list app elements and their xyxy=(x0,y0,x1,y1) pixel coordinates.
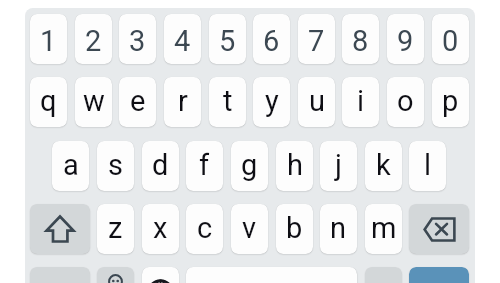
button[interactable]: d xyxy=(142,141,179,191)
staticText: 5 xyxy=(219,24,236,58)
button[interactable]: j xyxy=(320,141,357,191)
button[interactable]: 6 xyxy=(253,14,290,64)
staticText: 2 xyxy=(85,24,102,58)
button[interactable]: y xyxy=(253,77,290,127)
staticText: a xyxy=(63,148,79,182)
button[interactable]: x xyxy=(142,204,179,254)
staticText: i xyxy=(357,84,365,118)
button[interactable]: b xyxy=(276,204,313,254)
staticText: 6 xyxy=(263,24,280,58)
button[interactable]: 2 xyxy=(75,14,112,64)
button[interactable]: Emoji xyxy=(97,267,134,283)
button[interactable]: c xyxy=(186,204,223,254)
button[interactable]: Enter xyxy=(409,267,469,283)
button[interactable]: Change language xyxy=(142,267,179,283)
button[interactable]: v xyxy=(231,204,268,254)
staticText: c xyxy=(197,211,213,245)
button[interactable]: o xyxy=(387,77,424,127)
staticText: l xyxy=(424,148,432,182)
button[interactable]: z xyxy=(97,204,134,254)
button[interactable]: k xyxy=(365,141,402,191)
staticText: u xyxy=(309,84,325,118)
button[interactable]: s xyxy=(97,141,134,191)
button[interactable]: 1 xyxy=(30,14,67,64)
staticText: d xyxy=(152,148,169,182)
button[interactable]: r xyxy=(164,77,201,127)
staticText: 8 xyxy=(352,24,369,58)
staticText: 1 xyxy=(40,24,57,58)
button[interactable]: 8 xyxy=(342,14,379,64)
button[interactable]: 9 xyxy=(387,14,424,64)
button[interactable]: 7 xyxy=(298,14,335,64)
staticText: e xyxy=(130,84,146,118)
staticText: s xyxy=(108,148,123,182)
staticText: k xyxy=(376,148,391,182)
staticText: 7 xyxy=(308,24,325,58)
staticText: j xyxy=(335,148,342,182)
staticText: z xyxy=(108,211,123,245)
staticText: o xyxy=(397,84,414,118)
button[interactable]: 4 xyxy=(164,14,201,64)
button[interactable]: g xyxy=(231,141,268,191)
staticText: t xyxy=(223,84,233,118)
button[interactable]: w xyxy=(75,77,112,127)
staticText: b xyxy=(286,211,303,245)
button[interactable]: u xyxy=(298,77,335,127)
button[interactable]: l xyxy=(409,141,446,191)
staticText: 0 xyxy=(442,24,459,58)
staticText: f xyxy=(199,148,210,182)
staticText: 4 xyxy=(174,24,191,58)
staticText: m xyxy=(371,211,397,245)
staticText: w xyxy=(83,84,105,118)
button[interactable]: t xyxy=(209,77,246,127)
button[interactable]: Backspace xyxy=(409,204,469,254)
staticText: p xyxy=(442,84,459,118)
staticText: 3 xyxy=(129,24,146,58)
button[interactable]: f xyxy=(186,141,223,191)
button[interactable]: p xyxy=(432,77,469,127)
staticText: g xyxy=(241,148,258,182)
button[interactable]: 3 xyxy=(119,14,156,64)
staticText: x xyxy=(153,211,168,245)
staticText: v xyxy=(242,211,257,245)
staticText: 9 xyxy=(397,24,414,58)
button[interactable]: h xyxy=(276,141,313,191)
staticText: h xyxy=(287,148,303,182)
staticText: n xyxy=(330,211,347,245)
button[interactable]: q xyxy=(30,77,67,127)
staticText: q xyxy=(40,84,57,118)
staticText: y xyxy=(265,84,279,118)
button[interactable]: i xyxy=(342,77,379,127)
button[interactable]: m xyxy=(365,204,402,254)
staticText: r xyxy=(178,84,188,118)
button[interactable]: a xyxy=(52,141,89,191)
button[interactable]: Period xyxy=(365,267,402,283)
button[interactable]: e xyxy=(119,77,156,127)
button[interactable]: 0 xyxy=(432,14,469,64)
button[interactable]: n xyxy=(320,204,357,254)
button[interactable]: 5 xyxy=(209,14,246,64)
button[interactable]: Shift xyxy=(30,204,90,254)
